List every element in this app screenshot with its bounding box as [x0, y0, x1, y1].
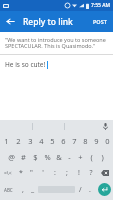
staticText: 4	[39, 136, 44, 146]
button[interactable]: Backspace	[97, 165, 113, 181]
button[interactable]: '	[37, 165, 49, 181]
button[interactable]: Enter	[98, 183, 111, 196]
staticText: 5	[50, 136, 55, 146]
button[interactable]: *	[15, 165, 26, 181]
staticText: 7	[72, 136, 77, 146]
staticText: 2	[16, 136, 21, 146]
button[interactable]: 6	[58, 133, 69, 149]
staticText: 1	[4, 136, 9, 146]
button[interactable]: ,	[17, 181, 28, 198]
button[interactable]: 3	[24, 133, 36, 149]
button[interactable]: 4	[36, 133, 47, 149]
button[interactable]: :	[49, 165, 61, 181]
button[interactable]: =\<	[0, 165, 15, 181]
button[interactable]: 0	[102, 133, 113, 149]
button[interactable]: 9	[91, 133, 102, 149]
staticText: '	[42, 168, 44, 178]
staticText: _	[31, 185, 35, 195]
staticText: ?	[89, 168, 93, 178]
button[interactable]	[33, 120, 65, 133]
button[interactable]: 1	[0, 133, 12, 149]
button[interactable]: (	[86, 149, 97, 165]
staticText: /	[79, 185, 82, 195]
staticText: 7:55 AM	[91, 2, 111, 9]
button[interactable]	[0, 120, 33, 133]
button[interactable]: _	[28, 181, 38, 198]
button[interactable]: /	[75, 181, 85, 198]
staticText: $	[33, 152, 38, 162]
staticText: )	[101, 152, 104, 162]
button[interactable]: Voice input	[97, 120, 113, 133]
button[interactable]: %	[41, 149, 53, 165]
staticText: &	[56, 152, 62, 162]
staticText: !	[78, 168, 80, 178]
button[interactable]: 2	[12, 133, 24, 149]
button[interactable]: -	[64, 149, 75, 165]
button[interactable]: 5	[47, 133, 58, 149]
button[interactable]: &	[53, 149, 64, 165]
staticText: 0	[105, 136, 110, 146]
button[interactable]: 8	[80, 133, 91, 149]
button[interactable]: ;	[61, 165, 73, 181]
staticText: 6	[61, 136, 66, 146]
staticText: POST	[93, 18, 107, 25]
button[interactable]: $	[29, 149, 41, 165]
staticText: He is so cute!	[5, 60, 46, 69]
staticText: .	[89, 185, 91, 195]
button[interactable]: #	[17, 149, 29, 165]
staticText: =\<	[4, 170, 12, 177]
staticText: *	[19, 168, 23, 178]
staticText: @	[8, 152, 15, 162]
button[interactable]: !	[73, 165, 85, 181]
staticText: Reply to link	[23, 16, 73, 28]
button[interactable]: ABC	[0, 181, 17, 198]
button[interactable]: @	[5, 149, 17, 165]
button[interactable]: POST	[87, 11, 113, 32]
staticText: 9	[94, 136, 99, 146]
staticText: (	[90, 152, 93, 162]
button[interactable]: +	[75, 149, 86, 165]
staticText: 3	[28, 136, 33, 146]
staticText: %	[44, 152, 51, 162]
button[interactable]: )	[97, 149, 108, 165]
staticText: ;	[66, 168, 68, 178]
staticText: ,	[22, 185, 24, 195]
staticText: -	[68, 152, 71, 162]
button[interactable]: ?	[85, 165, 97, 181]
button[interactable]: Back	[0, 11, 21, 32]
staticText: "We want to introduce you to someone SPE…	[5, 36, 106, 50]
button[interactable]: 7	[69, 133, 80, 149]
button[interactable]: "	[26, 165, 37, 181]
button[interactable]: .	[85, 181, 95, 198]
staticText: "	[30, 168, 33, 178]
staticText: +	[78, 152, 83, 162]
staticText: #	[21, 152, 26, 162]
staticText: 8	[83, 136, 88, 146]
staticText: ABC	[4, 187, 13, 193]
staticText: :	[54, 168, 56, 178]
